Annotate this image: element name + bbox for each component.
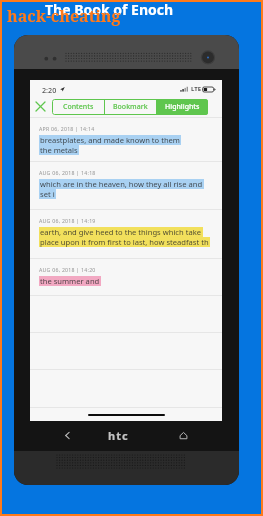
button[interactable]: Contents: [52, 99, 104, 115]
button[interactable]: AUG 06, 2018 | 14:20: [30, 258, 222, 295]
button[interactable]: Highlights: [157, 99, 208, 115]
staticText: APR 06, 2018 | 14:14: [39, 125, 95, 132]
staticText: earth, and give heed to the things which…: [40, 227, 202, 237]
button[interactable]: APR 06, 2018 | 14:14: [30, 117, 222, 161]
staticText: htc: [108, 428, 129, 443]
staticText: AUG 06, 2018 | 14:20: [39, 266, 96, 273]
button[interactable]: Home: [174, 426, 192, 444]
staticText: Bookmark: [113, 102, 148, 112]
button[interactable]: AUG 06, 2018 | 14:18: [30, 161, 222, 209]
button[interactable]: AUG 06, 2018 | 14:19: [30, 209, 222, 258]
staticText: set i: [40, 189, 55, 199]
staticText: 2:20: [42, 85, 57, 95]
staticText: the summer and: [40, 276, 100, 286]
button[interactable]: Back: [58, 426, 76, 444]
staticText: which are in the heaven, how they all ri…: [40, 179, 203, 189]
button[interactable]: Close: [32, 98, 49, 115]
staticText: hack-cheating: [7, 5, 121, 27]
staticText: LTE: [191, 85, 202, 93]
button[interactable]: Bookmark: [105, 99, 156, 115]
staticText: the metals: [40, 145, 78, 155]
staticText: Contents: [63, 102, 94, 112]
staticText: AUG 06, 2018 | 14:18: [39, 169, 96, 176]
staticText: breastplates, and made known to them: [40, 135, 180, 145]
staticText: place upon it from first to last, how st…: [40, 237, 209, 247]
staticText: Highlights: [165, 102, 200, 112]
staticText: The Book of Enoch: [45, 0, 174, 19]
staticText: AUG 06, 2018 | 14:19: [39, 217, 96, 224]
